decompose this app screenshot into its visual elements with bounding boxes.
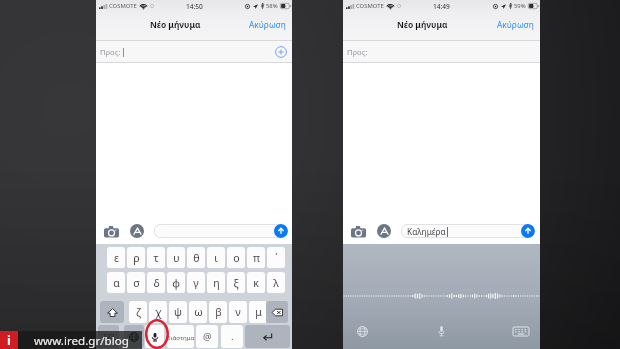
staticText: φ	[172, 276, 180, 290]
button[interactable]: ξ	[227, 272, 245, 293]
button[interactable]: τ	[147, 247, 165, 268]
button[interactable]: ζ	[129, 301, 147, 323]
button[interactable]: Shift	[100, 301, 124, 323]
button[interactable]: Ακύρωση	[487, 14, 540, 35]
button[interactable]: δ	[147, 272, 165, 293]
button[interactable]: λ	[267, 272, 285, 293]
staticText: .	[231, 330, 234, 343]
staticText: τ	[153, 251, 159, 265]
staticText: δ	[153, 276, 160, 290]
button[interactable]: ρ	[127, 247, 145, 268]
staticText: ψ	[174, 305, 182, 319]
staticText: α	[113, 276, 120, 290]
staticText: 58%	[266, 2, 278, 10]
button[interactable]: υ	[167, 247, 185, 268]
staticText: μ	[255, 305, 262, 319]
staticText: COSMOTE	[109, 2, 137, 10]
button[interactable]: π	[247, 247, 265, 268]
staticText: 14:50	[186, 2, 203, 11]
staticText: υ	[173, 251, 180, 265]
staticText: π	[253, 251, 260, 265]
staticText: ο	[233, 251, 240, 265]
button[interactable]: Microphone	[437, 325, 446, 337]
staticText: Καλημέρα	[407, 226, 446, 237]
staticText: ν	[235, 305, 241, 319]
staticText: σ	[133, 276, 140, 290]
button[interactable]: Send	[521, 224, 535, 238]
staticText: διάστημα	[167, 333, 194, 341]
staticText: κ	[253, 276, 259, 290]
button[interactable]: α	[107, 272, 125, 293]
button[interactable]: App Store	[130, 224, 144, 238]
button[interactable]: Camera	[351, 226, 366, 238]
button[interactable]: App Store	[377, 224, 391, 238]
button[interactable]: Change keyboard	[124, 325, 144, 348]
button[interactable]: θ	[187, 247, 205, 268]
button[interactable]: σ	[127, 272, 145, 293]
staticText: 14:49	[433, 2, 450, 11]
button[interactable]: Backspace	[266, 301, 288, 323]
staticText: i	[7, 331, 11, 349]
button[interactable]: .	[221, 325, 243, 348]
staticText: Νέο μήνυμα	[397, 19, 448, 30]
staticText: Προς:	[347, 47, 368, 57]
staticText: Προς:	[100, 47, 121, 57]
staticText: ξ	[233, 276, 239, 290]
button[interactable]: διάστημα	[167, 325, 194, 348]
staticText: Νέο μήνυμα	[150, 19, 201, 30]
staticText: λ	[273, 276, 279, 290]
staticText: Ακύρωση	[249, 19, 286, 30]
staticText: 123	[103, 332, 115, 341]
button[interactable]: Camera	[104, 226, 119, 238]
button[interactable]: ι	[207, 247, 225, 268]
button[interactable]: φ	[167, 272, 185, 293]
button[interactable]: ο	[227, 247, 245, 268]
button[interactable]: Return	[245, 325, 290, 348]
button[interactable]: Keyboard	[513, 327, 529, 336]
button[interactable]: Καλημέρα	[401, 224, 535, 238]
staticText: @	[203, 330, 212, 343]
staticText: www.ired.gr/blog	[34, 333, 129, 349]
staticText: ζ	[136, 305, 141, 319]
button[interactable]: χ	[149, 301, 167, 323]
staticText: Ακύρωση	[497, 19, 534, 30]
button[interactable]: μ	[249, 301, 267, 323]
staticText: η	[213, 276, 220, 290]
button[interactable]: ν	[229, 301, 247, 323]
staticText: ΄	[275, 251, 278, 265]
button[interactable]: Change keyboard	[357, 326, 368, 337]
staticText: ε	[114, 251, 119, 265]
button[interactable]: Dictation	[145, 325, 164, 348]
button[interactable]: ε	[107, 247, 125, 268]
staticText: ι	[214, 251, 218, 265]
button[interactable]: Numbers	[98, 325, 119, 348]
staticText: χ	[155, 305, 162, 319]
staticText: 59%	[514, 2, 526, 10]
button[interactable]: Ακύρωση	[239, 14, 292, 35]
button[interactable]: η	[207, 272, 225, 293]
button[interactable]: ΄	[267, 247, 285, 268]
button[interactable]: Send	[154, 224, 288, 238]
staticText: θ	[193, 251, 200, 265]
button[interactable]: κ	[247, 272, 265, 293]
button[interactable]: γ	[187, 272, 205, 293]
button[interactable]: Add recipient	[275, 46, 287, 58]
staticText: COSMOTE	[356, 2, 384, 10]
button[interactable]: ω	[189, 301, 207, 323]
button[interactable]: ψ	[169, 301, 187, 323]
button[interactable]: β	[209, 301, 227, 323]
staticText: ρ	[133, 251, 140, 265]
staticText: β	[215, 305, 222, 319]
staticText: ω	[194, 305, 203, 319]
button[interactable]: @	[196, 325, 218, 348]
staticText: γ	[193, 276, 199, 290]
button[interactable]: Send	[274, 224, 288, 238]
